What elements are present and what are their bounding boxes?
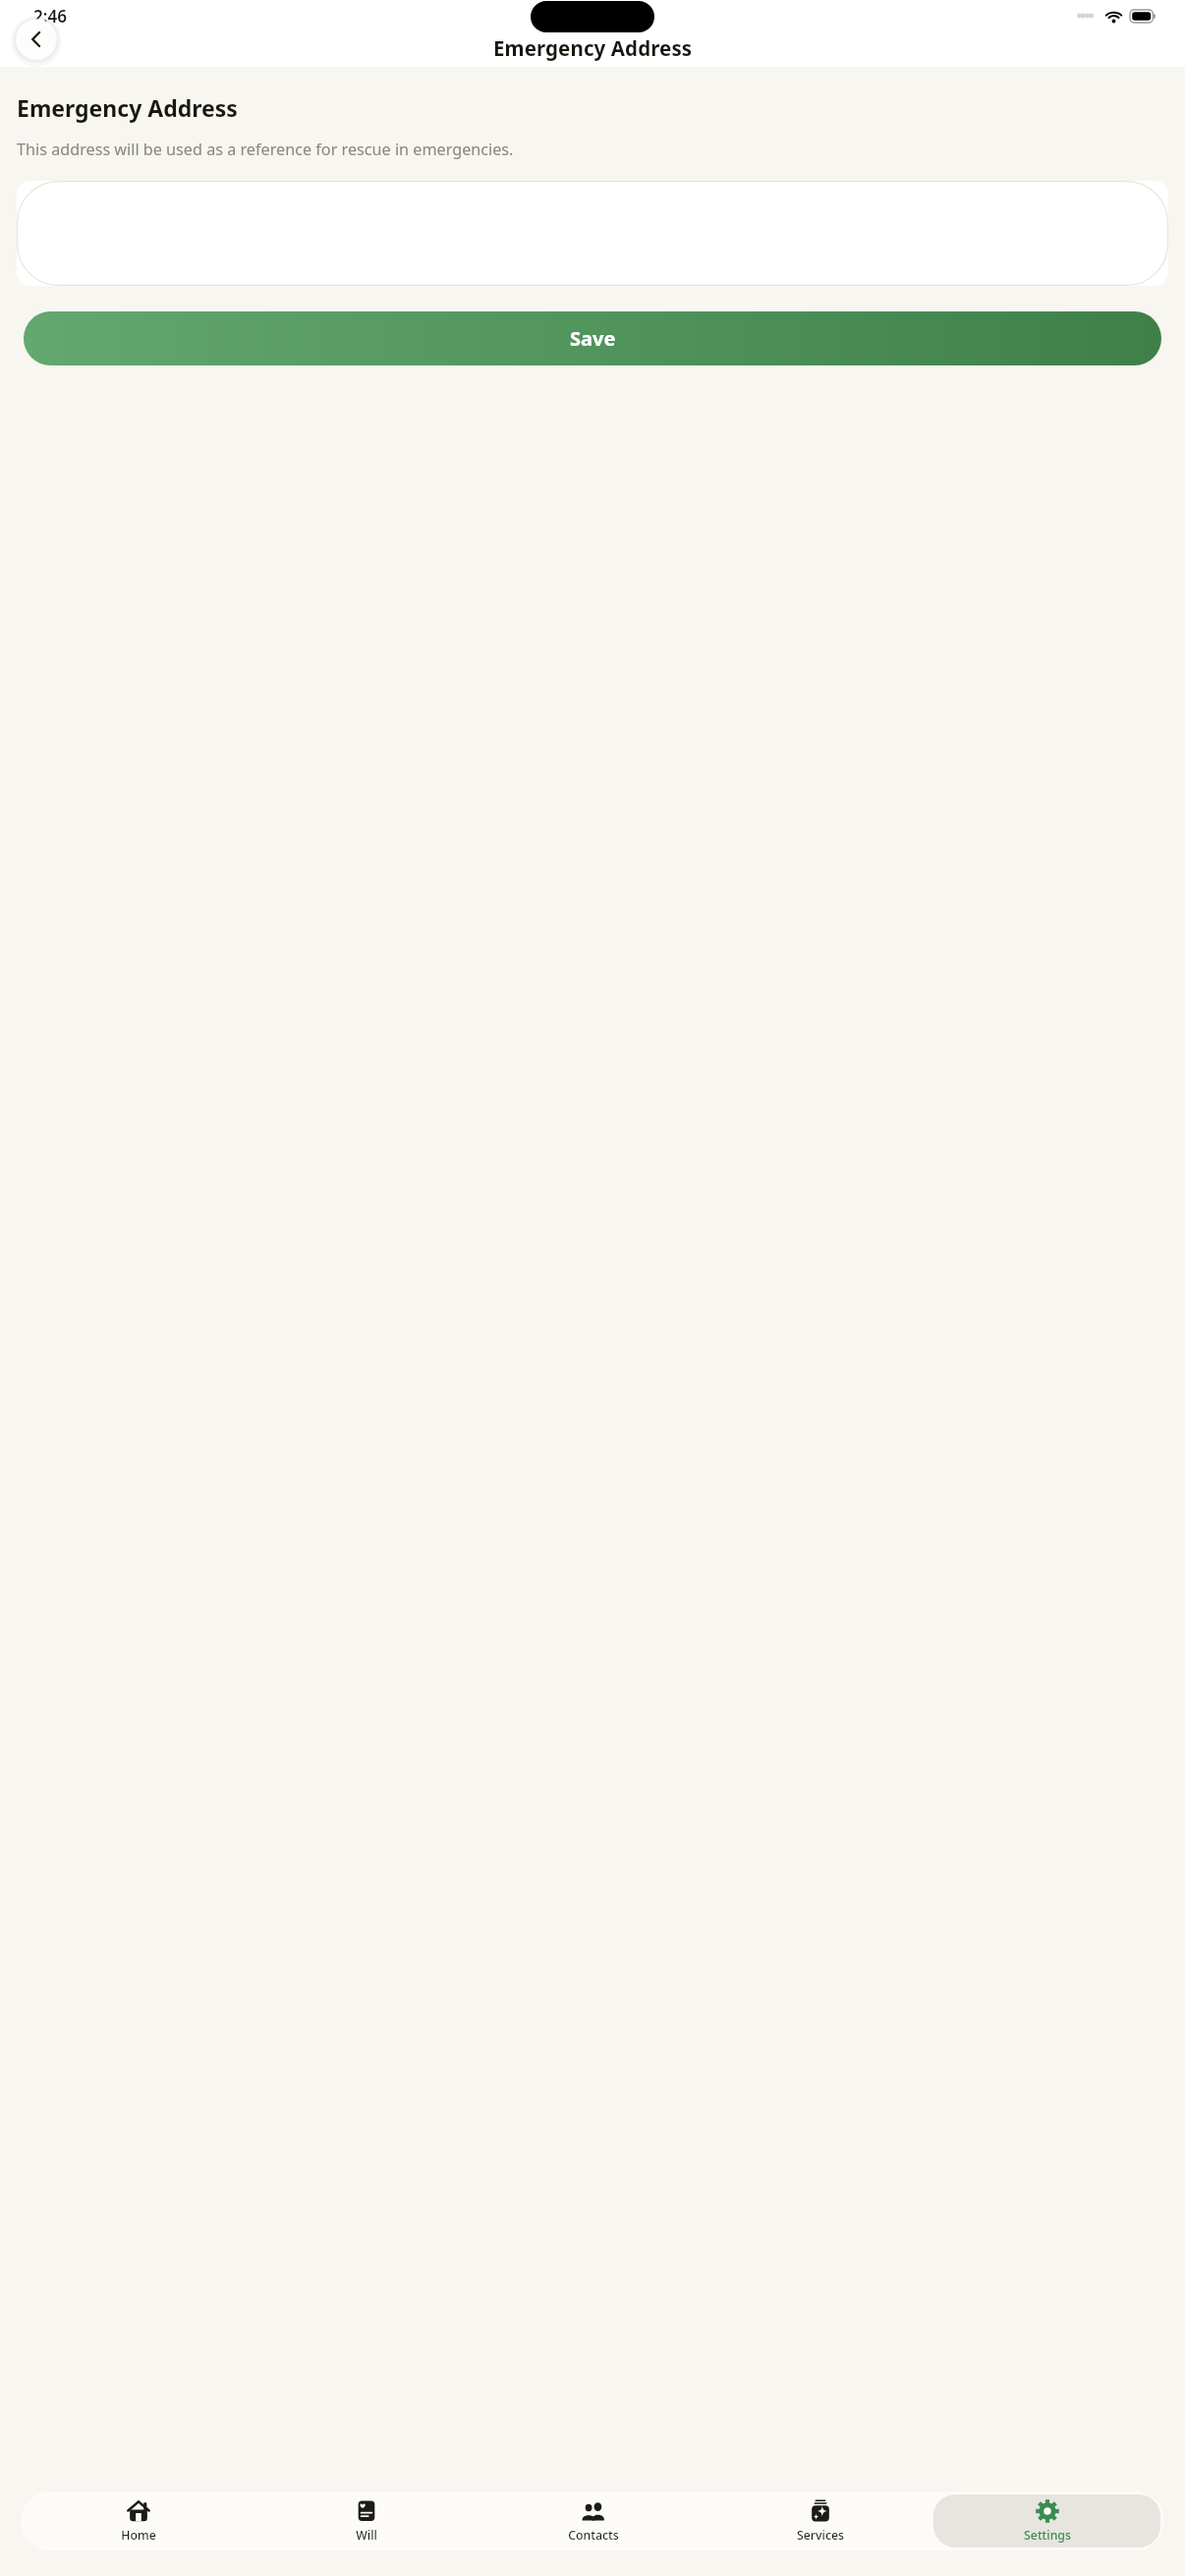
staticText: This address will be used as a reference… [17,139,514,160]
button[interactable]: Will [253,2494,480,2548]
staticText: 2:46 [33,5,67,28]
button[interactable]: Services [706,2494,933,2548]
staticText: Save [570,325,616,352]
button[interactable]: Home [25,2494,253,2548]
staticText: Emergency Address [493,34,693,62]
button[interactable]: Save [24,311,1161,365]
staticText: Settings [1024,2527,1071,2544]
button[interactable]: Settings [933,2494,1160,2548]
staticText: Contacts [568,2527,619,2544]
staticText: Will [356,2527,377,2544]
button[interactable] [17,181,1168,286]
staticText: Services [797,2527,844,2544]
staticText: Home [121,2527,156,2544]
button[interactable]: Back [16,19,57,60]
button[interactable]: Contacts [480,2494,706,2548]
staticText: Emergency Address [17,92,238,123]
